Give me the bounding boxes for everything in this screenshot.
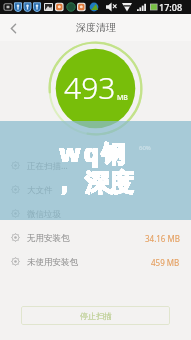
staticText: 459 MB xyxy=(151,257,180,268)
staticText: ， xyxy=(52,168,76,198)
staticText: 深度 xyxy=(85,168,133,198)
staticText: wq钢 xyxy=(59,136,129,169)
staticText: MB xyxy=(117,93,128,103)
staticText: wq钢 xyxy=(59,136,129,169)
staticText: ， xyxy=(52,168,76,198)
staticText: 34.16 MB xyxy=(145,233,180,244)
staticText: ， xyxy=(52,168,76,198)
staticText: wq钢 xyxy=(59,136,129,169)
button[interactable]: 无用安装包 xyxy=(0,226,191,250)
staticText: 微信垃圾 xyxy=(27,209,61,220)
button[interactable]: 正在扫描... xyxy=(0,154,191,178)
staticText: wq钢 xyxy=(59,136,129,169)
staticText: 深度 xyxy=(85,168,133,198)
staticText: ， xyxy=(52,168,76,198)
button[interactable]: 微信垃圾 xyxy=(0,202,191,226)
staticText: 深度 xyxy=(85,168,133,198)
button[interactable]: Back xyxy=(0,15,26,41)
staticText: wq钢 xyxy=(59,136,129,169)
staticText: 深度 xyxy=(85,168,133,198)
staticText: 17:08 xyxy=(159,1,183,13)
staticText: 深度 xyxy=(85,168,133,198)
staticText: ， xyxy=(52,168,76,198)
staticText: 深度清理 xyxy=(76,21,116,34)
staticText: 无用安装包 xyxy=(27,233,70,244)
staticText: ， xyxy=(52,168,76,198)
staticText: wq钢 xyxy=(59,136,129,169)
staticText: 深度 xyxy=(85,168,133,198)
staticText: ， xyxy=(52,168,76,198)
button[interactable]: 大文件 xyxy=(0,178,191,202)
button[interactable]: 停止扫描 xyxy=(21,306,170,325)
staticText: wq钢 xyxy=(59,136,129,169)
staticText: 深度 xyxy=(85,168,133,198)
staticText: 未使用安装包 xyxy=(27,257,78,268)
staticText: wq钢 xyxy=(59,136,129,169)
staticText: 493 xyxy=(64,67,116,108)
staticText: 深度 xyxy=(85,168,133,198)
staticText: 正在扫描... xyxy=(27,160,68,172)
staticText: 大文件 xyxy=(27,185,53,196)
staticText: wq钢 xyxy=(59,136,129,169)
staticText: 60% xyxy=(139,144,151,152)
staticText: 深度 xyxy=(85,168,133,198)
staticText: ， xyxy=(52,168,76,198)
staticText: ， xyxy=(52,168,76,198)
staticText: 停止扫描 xyxy=(80,311,112,321)
button[interactable]: 未使用安装包 xyxy=(0,250,191,274)
